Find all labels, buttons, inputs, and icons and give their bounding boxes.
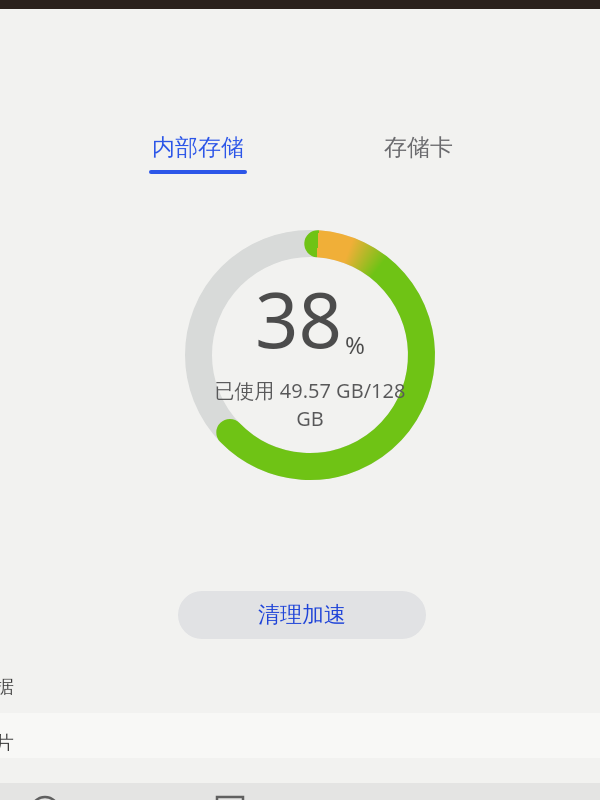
staticText: % bbox=[345, 328, 365, 361]
other: System navigation bar bbox=[0, 783, 600, 800]
staticText: 据 bbox=[0, 675, 14, 699]
staticText: 清理加速 bbox=[258, 601, 346, 629]
staticText: 内部存储 bbox=[152, 133, 244, 162]
staticText: 38 bbox=[255, 267, 342, 371]
staticText: 片 bbox=[0, 731, 14, 755]
button[interactable]: 存储卡 bbox=[355, 133, 481, 173]
staticText: 已使用 49.57 GB/128 GB bbox=[205, 377, 415, 432]
staticText: 存储卡 bbox=[384, 133, 453, 162]
button[interactable]: 内部存储 bbox=[123, 133, 273, 185]
button[interactable]: 清理加速 bbox=[178, 591, 426, 639]
